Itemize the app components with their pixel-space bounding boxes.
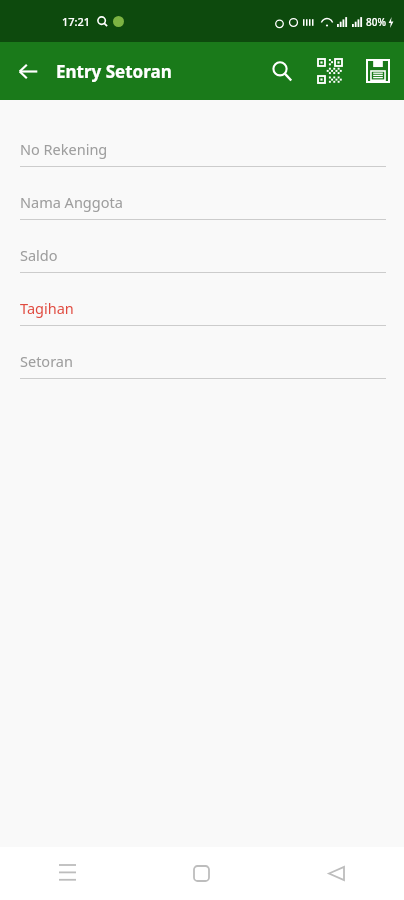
staticText: Saldo [20,245,58,265]
button[interactable]: Saldo [0,235,404,288]
staticText: Setoran [20,351,73,371]
button[interactable]: Tagihan [0,288,404,341]
button[interactable]: Search [258,47,306,95]
button[interactable]: Recent apps [0,847,134,900]
staticText: 80% [366,15,386,29]
button[interactable]: Save [354,47,402,95]
button[interactable]: Home [134,847,269,900]
staticText: Tagihan [20,298,74,318]
staticText: Entry Setoran [56,60,172,83]
staticText: No Rekening [20,139,108,159]
button[interactable]: No Rekening [0,129,404,182]
button[interactable]: Back [269,847,404,900]
staticText: Nama Anggota [20,192,123,212]
button[interactable]: Scan QR code [306,47,354,95]
button[interactable]: Setoran [0,341,404,394]
button[interactable]: Back [0,43,56,99]
staticText: 17:21 [62,14,91,29]
button[interactable]: Nama Anggota [0,182,404,235]
